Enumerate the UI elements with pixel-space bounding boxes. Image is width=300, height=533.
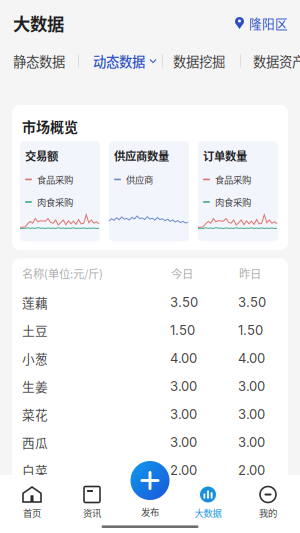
- button[interactable]: 数据资产: [241, 47, 300, 74]
- staticText: 肉食采购: [37, 195, 73, 209]
- staticText: 市场概览: [22, 116, 78, 136]
- button[interactable]: 大数据: [178, 475, 238, 533]
- staticText: 静态数据: [13, 51, 65, 71]
- staticText: 数据挖掘: [173, 51, 225, 71]
- staticText: 1.50: [170, 322, 195, 338]
- staticText: 数据资产: [253, 51, 300, 71]
- staticText: 2.00: [238, 462, 265, 478]
- staticText: 名称(单位:元/斤): [22, 265, 103, 281]
- button[interactable]: 动态数据: [79, 47, 162, 74]
- staticText: 供应商: [126, 173, 153, 186]
- staticText: 大数据: [194, 506, 221, 519]
- staticText: 订单数量: [203, 147, 247, 164]
- staticText: 大数据: [13, 10, 64, 36]
- staticText: 3.00: [170, 378, 197, 394]
- button[interactable]: 资讯: [62, 475, 122, 533]
- button[interactable]: 首页: [2, 475, 62, 533]
- button[interactable]: 我的: [238, 475, 298, 533]
- staticText: 动态数据: [93, 51, 145, 71]
- staticText: 3.00: [238, 378, 265, 394]
- staticText: 莲藕: [22, 293, 48, 311]
- staticText: 发布: [141, 505, 159, 518]
- staticText: 1.50: [238, 322, 263, 338]
- staticText: 3.50: [238, 294, 266, 310]
- staticText: 土豆: [22, 321, 48, 339]
- button[interactable]: 隆阳区: [227, 0, 300, 46]
- staticText: 隆阳区: [249, 14, 288, 32]
- staticText: 食品采购: [215, 173, 251, 186]
- staticText: 2.00: [170, 462, 197, 478]
- staticText: 生姜: [22, 377, 48, 395]
- staticText: 3.00: [170, 406, 197, 422]
- button[interactable]: 静态数据: [0, 47, 78, 74]
- staticText: 4.00: [170, 350, 197, 366]
- staticText: 小葱: [22, 349, 48, 367]
- staticText: 白菜: [22, 461, 48, 479]
- staticText: 4.00: [238, 350, 265, 366]
- staticText: 3.00: [170, 434, 197, 450]
- button[interactable]: 数据挖掘: [163, 47, 240, 74]
- staticText: 肉食采购: [215, 195, 251, 209]
- staticText: 3.00: [238, 406, 265, 422]
- staticText: 3.00: [238, 434, 265, 450]
- staticText: 资讯: [83, 506, 101, 519]
- button[interactable]: 发布: [120, 461, 180, 533]
- staticText: 交易额: [25, 147, 58, 164]
- staticText: 3.50: [170, 294, 198, 310]
- staticText: 我的: [259, 506, 277, 519]
- staticText: 食品采购: [37, 173, 73, 186]
- staticText: 菜花: [22, 405, 48, 423]
- staticText: 首页: [23, 506, 41, 519]
- staticText: 西瓜: [22, 433, 48, 451]
- staticText: 供应商数量: [114, 147, 169, 164]
- staticText: 今日: [171, 265, 193, 281]
- staticText: 昨日: [239, 265, 261, 281]
